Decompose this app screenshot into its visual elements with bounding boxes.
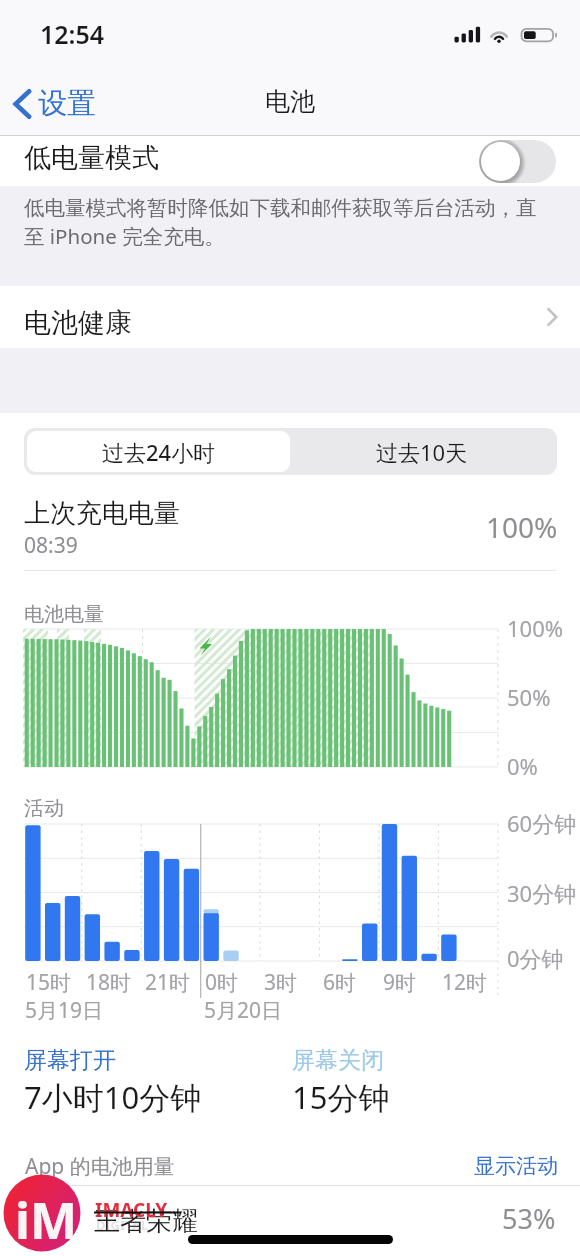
button[interactable]: Low Power Mode toggle xyxy=(479,140,556,183)
staticText: 7小时10分钟 xyxy=(24,1076,202,1118)
staticText: 08:39 xyxy=(24,531,78,560)
staticText: 6时 xyxy=(323,968,357,997)
staticText: 活动 xyxy=(24,796,64,821)
staticText: 过去24小时 xyxy=(102,437,216,467)
staticText: 5月19日 xyxy=(25,996,104,1025)
staticText: 屏幕打开 xyxy=(24,1046,116,1075)
staticText: 21时 xyxy=(145,968,191,997)
staticText: 低电量模式 xyxy=(24,141,159,175)
staticText: 100% xyxy=(486,508,558,546)
staticText: 低电量模式将暂时降低如下载和邮件获取等后台活动，直 至 iPhone 完全充电。 xyxy=(24,195,537,250)
staticText: 53% xyxy=(502,1200,556,1237)
button[interactable]: 过去24小时 xyxy=(27,431,290,472)
staticText: App 的电池用量 xyxy=(25,1152,175,1181)
staticText: 15分钟 xyxy=(292,1076,390,1118)
staticText: 电池 xyxy=(265,86,315,117)
staticText: 上次充电电量 xyxy=(24,497,180,530)
staticText: DIGITAL xyxy=(96,1216,148,1234)
button[interactable]: 设置 xyxy=(12,85,96,122)
staticText: 30分钟 xyxy=(507,878,577,908)
staticText: 5月20日 xyxy=(204,996,283,1025)
staticText: 设置 xyxy=(38,85,96,122)
staticText: 过去10天 xyxy=(376,437,468,467)
staticText: IMACLY xyxy=(95,1197,168,1223)
staticText: 王者荣耀 xyxy=(94,1205,198,1238)
staticText: 3时 xyxy=(264,968,298,997)
staticText: 12:54 xyxy=(40,17,105,51)
staticText: 0时 xyxy=(205,968,239,997)
staticText: 12时 xyxy=(442,968,488,997)
staticText: 18时 xyxy=(86,968,132,997)
staticText: 15时 xyxy=(26,968,72,997)
staticText: 0% xyxy=(507,751,538,781)
staticText: iM xyxy=(15,1186,78,1254)
staticText: 9时 xyxy=(383,968,417,997)
button[interactable]: 低电量模式 xyxy=(0,136,580,186)
staticText: 电池电量 xyxy=(24,602,104,627)
button[interactable]: 显示活动 xyxy=(474,1153,558,1179)
button[interactable]: 过去10天 xyxy=(290,431,554,472)
staticText: 60分钟 xyxy=(507,808,577,838)
staticText: 100% xyxy=(507,613,564,643)
staticText: 50% xyxy=(507,682,551,712)
other: More xyxy=(546,306,558,328)
button[interactable]: 电池健康 xyxy=(0,286,580,348)
staticText: 0分钟 xyxy=(507,943,564,973)
staticText: 电池健康 xyxy=(24,306,132,340)
staticText: 屏幕关闭 xyxy=(292,1046,384,1075)
